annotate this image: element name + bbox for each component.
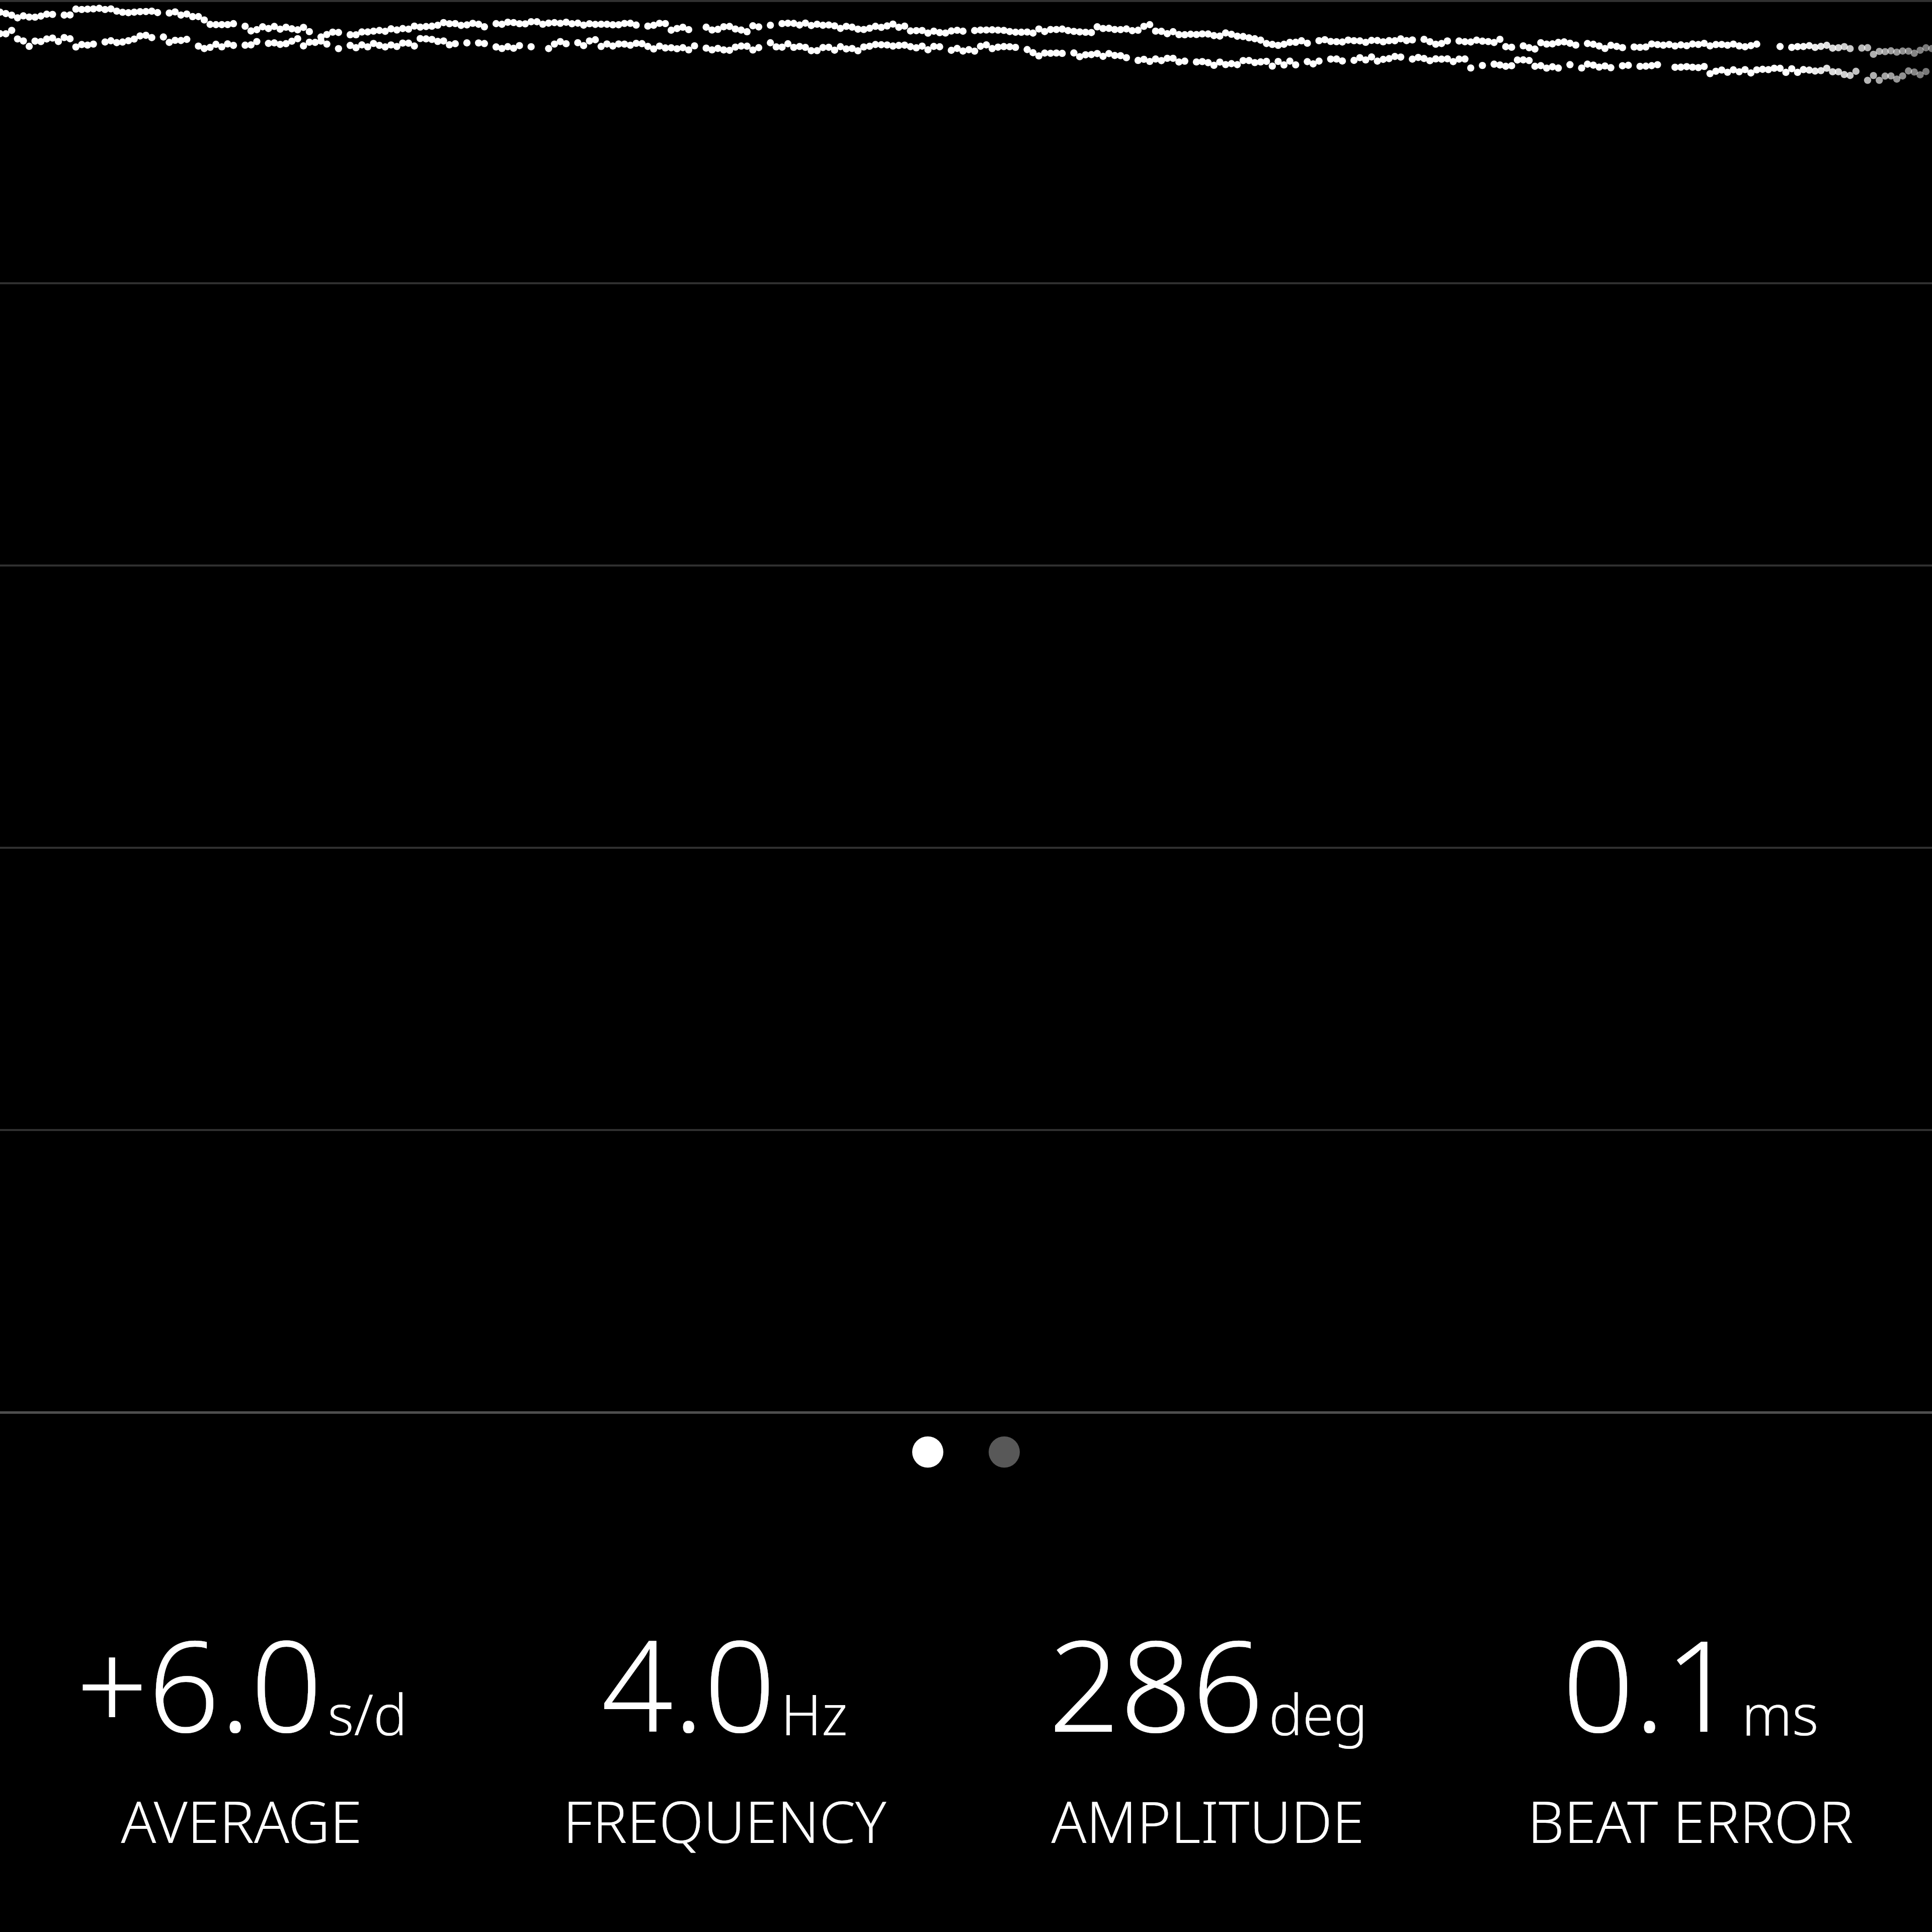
staticText: Hz: [781, 1675, 848, 1752]
button[interactable]: 286: [966, 1597, 1449, 1860]
button[interactable]: Rate trace graph: [0, 0, 1932, 1412]
staticText: 286: [1048, 1597, 1264, 1769]
button[interactable]: 4.0: [483, 1597, 966, 1860]
staticText: 4.0: [601, 1597, 776, 1769]
staticText: +6.0: [76, 1597, 323, 1769]
staticText: AVERAGE: [121, 1781, 362, 1860]
staticText: BEAT ERROR: [1527, 1781, 1854, 1860]
staticText: ms: [1742, 1675, 1819, 1752]
staticText: deg: [1269, 1675, 1367, 1752]
button[interactable]: +6.0: [0, 1597, 483, 1860]
button[interactable]: Page 2 of 2: [989, 1436, 1020, 1468]
staticText: s/d: [328, 1675, 408, 1752]
button[interactable]: Page 1 of 2, selected: [912, 1436, 943, 1468]
button[interactable]: 0.1: [1449, 1597, 1932, 1860]
staticText: AMPLITUDE: [1051, 1781, 1364, 1860]
staticText: 0.1: [1562, 1597, 1737, 1769]
staticText: FREQUENCY: [563, 1781, 887, 1860]
